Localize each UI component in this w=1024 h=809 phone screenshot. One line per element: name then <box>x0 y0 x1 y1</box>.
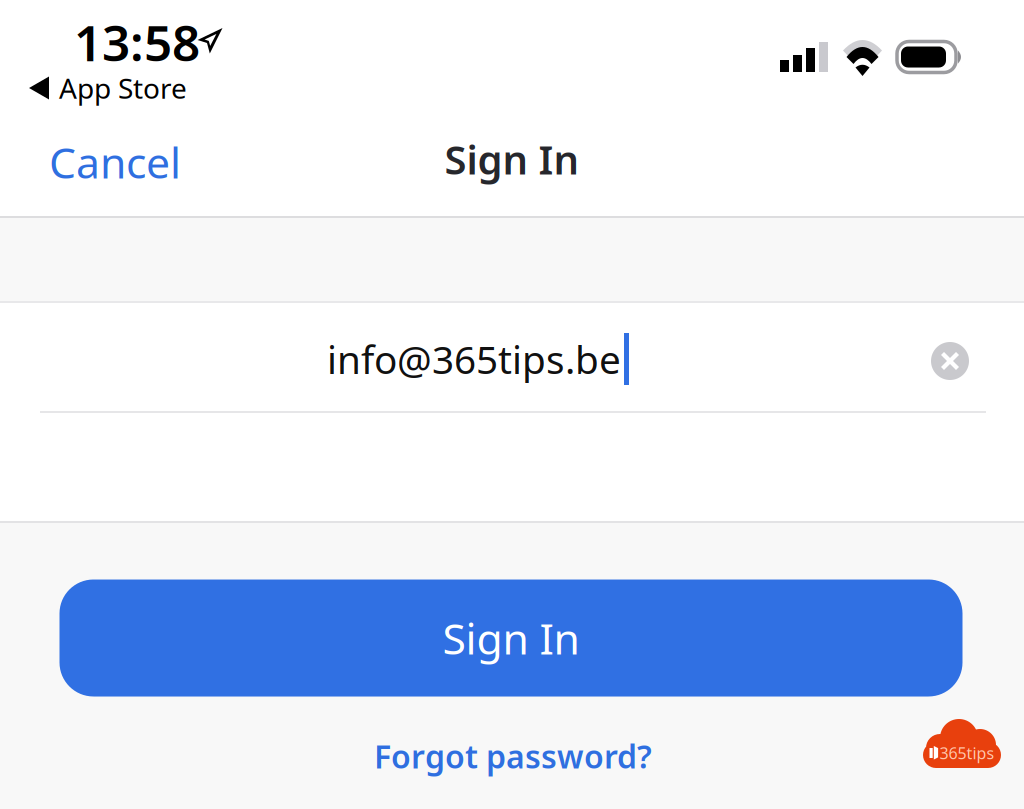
button[interactable]: Cancel <box>27 116 203 208</box>
staticText: App Store <box>59 69 187 107</box>
staticText: info@365tips.be <box>327 333 621 385</box>
staticText: 365tips <box>939 742 994 764</box>
staticText: Sign In <box>444 132 579 185</box>
button[interactable]: Email address <box>40 307 986 411</box>
staticText: Cancel <box>49 134 181 190</box>
button[interactable]: App Store <box>23 63 193 113</box>
button[interactable]: Sign In <box>59 579 962 696</box>
staticText: Forgot password? <box>374 735 652 777</box>
staticText: Sign In <box>442 610 579 666</box>
staticText: 13:58 <box>74 9 200 75</box>
button[interactable]: Forgot password? <box>360 725 666 787</box>
button[interactable]: Clear text <box>922 333 978 389</box>
